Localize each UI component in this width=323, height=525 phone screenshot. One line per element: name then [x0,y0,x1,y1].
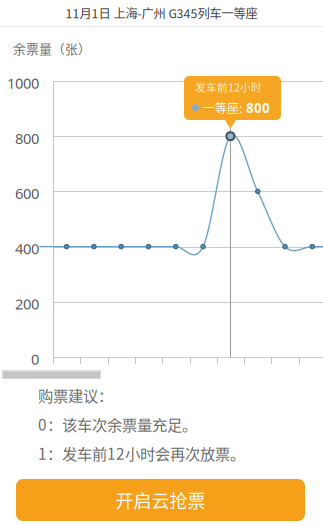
button[interactable]: 开启云抢票 [16,479,305,521]
staticText: 800 [15,128,39,148]
staticText: 0 [31,349,39,369]
staticText: 200 [15,294,39,314]
staticText: 购票建议： [38,384,113,406]
staticText: 11月1日 上海-广州 G345列车一等座 [65,4,257,22]
staticText: 发车前12小时 [195,79,262,95]
staticText: 余票量（张） [13,39,91,57]
staticText: 一等座: [203,99,242,116]
staticText: 600 [15,183,39,203]
staticText: 1000 [7,73,39,93]
staticText: 400 [15,239,39,259]
staticText: 开启云抢票 [115,487,205,513]
staticText: 0：该车次余票量充足。 [38,413,197,435]
staticText: 1：发车前12小时会再次放票。 [38,442,245,464]
staticText: 800 [246,99,270,117]
